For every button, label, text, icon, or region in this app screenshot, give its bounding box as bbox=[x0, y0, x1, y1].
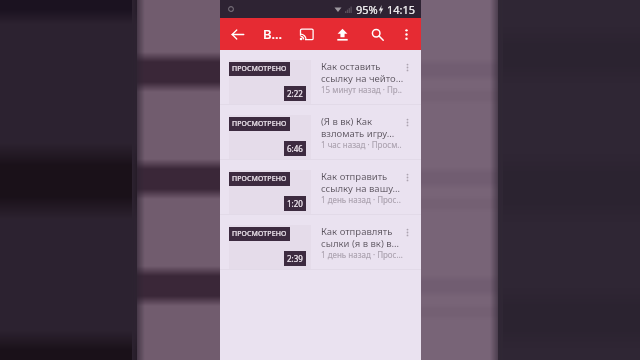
staticText: Как оставить ссылку на чейто… bbox=[321, 60, 404, 84]
staticText: 1:20 bbox=[287, 198, 303, 209]
staticText: ПРОСМОТРЕНО bbox=[232, 174, 287, 184]
staticText: 95% bbox=[356, 2, 378, 17]
staticText: ПРОСМОТРЕНО bbox=[232, 119, 287, 129]
button[interactable]: Back bbox=[226, 23, 248, 45]
button[interactable]: Upload bbox=[329, 21, 355, 47]
button[interactable]: More options bbox=[395, 23, 417, 45]
staticText: (Я в вк) Как взломать игру… bbox=[321, 115, 395, 139]
button[interactable]: Cast bbox=[293, 21, 319, 47]
button[interactable]: ПРОСМОТРЕНО bbox=[220, 215, 421, 269]
button[interactable]: More options bbox=[399, 170, 415, 190]
button[interactable]: ПРОСМОТРЕНО bbox=[220, 105, 421, 159]
staticText: В... bbox=[263, 25, 283, 43]
button[interactable]: More options bbox=[399, 225, 415, 245]
button[interactable]: More options bbox=[399, 115, 415, 135]
staticText: 2:22 bbox=[287, 88, 303, 99]
staticText: ПРОСМОТРЕНО bbox=[232, 229, 287, 239]
staticText: 2:39 bbox=[287, 253, 303, 264]
staticText: 1 час назад · Просм.. bbox=[321, 139, 402, 150]
staticText: 1 день назад · Прос… bbox=[321, 249, 403, 260]
button[interactable]: ПРОСМОТРЕНО bbox=[220, 50, 421, 104]
staticText: 6:46 bbox=[287, 143, 303, 154]
button[interactable]: ПРОСМОТРЕНО bbox=[220, 160, 421, 214]
staticText: 14:15 bbox=[387, 2, 416, 17]
staticText: ПРОСМОТРЕНО bbox=[232, 64, 287, 74]
button[interactable]: Search bbox=[364, 21, 390, 47]
staticText: Как отправлять сылки (я в вк) в… bbox=[321, 225, 400, 249]
staticText: 15 минут назад · Пр.. bbox=[321, 84, 403, 95]
staticText: Как отправить ссылку на вашу… bbox=[321, 170, 401, 194]
staticText: 1 день назад · Прос.. bbox=[321, 194, 401, 205]
button[interactable]: More options bbox=[399, 60, 415, 80]
